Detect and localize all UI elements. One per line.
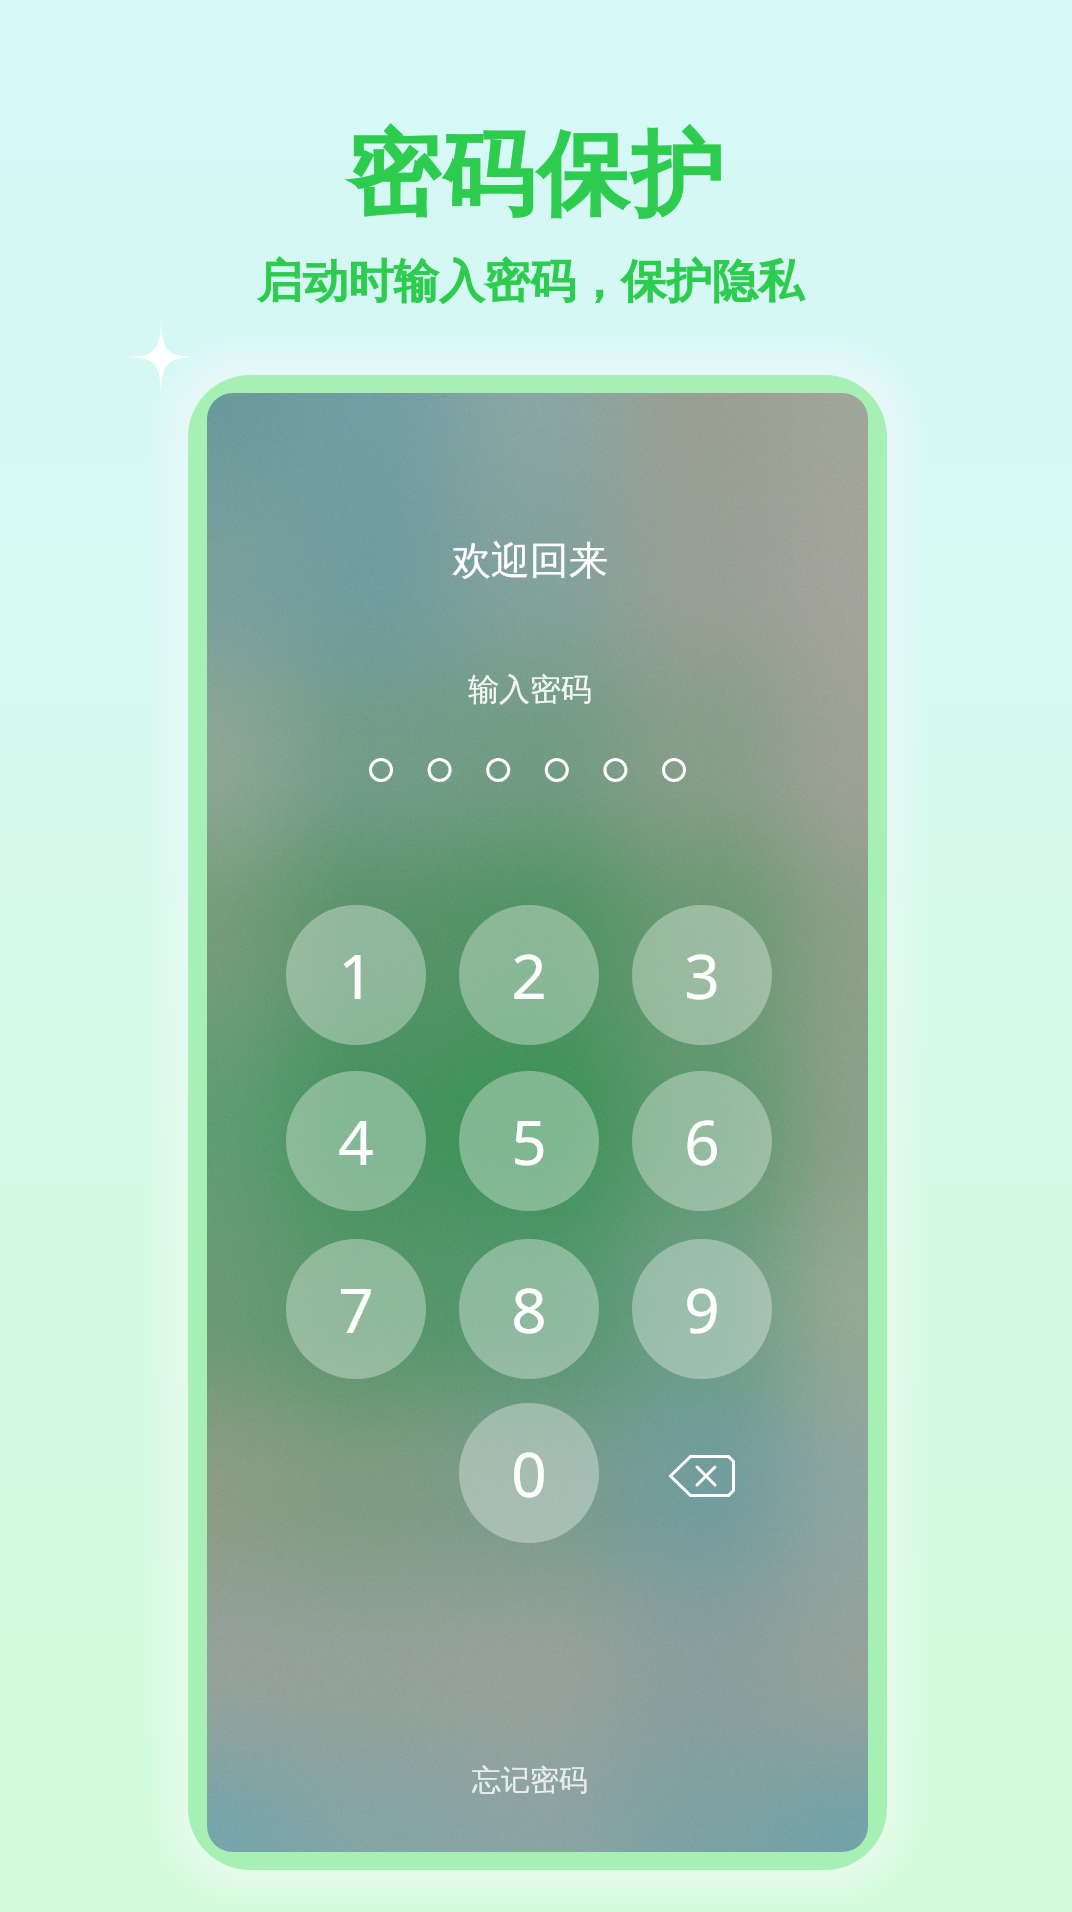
button[interactable]: 8 [459,1239,599,1379]
staticText: 5 [511,1099,547,1183]
staticText: 密码保护 [347,117,726,233]
staticText: 0 [511,1431,547,1515]
staticText: 1 [338,933,374,1017]
button[interactable]: 9 [632,1239,772,1379]
button[interactable]: 1 [286,905,426,1045]
button[interactable]: Backspace [632,1403,772,1543]
staticText: 9 [684,1267,720,1351]
button[interactable]: 忘记密码 [430,1750,630,1810]
staticText: 8 [511,1267,547,1351]
button[interactable]: 2 [459,905,599,1045]
staticText: 6 [684,1099,720,1183]
staticText: 3 [684,933,720,1017]
staticText: 欢迎回来 [452,536,608,585]
button[interactable]: 6 [632,1071,772,1211]
staticText: 输入密码 [468,670,592,709]
button[interactable]: 0 [459,1403,599,1543]
button[interactable]: 3 [632,905,772,1045]
staticText: 启动时输入密码，保护隐私 [257,253,803,310]
staticText: 7 [338,1267,374,1351]
staticText: 4 [338,1099,374,1183]
staticText: 忘记密码 [472,1762,588,1799]
staticText: 2 [511,933,547,1017]
button[interactable]: 4 [286,1071,426,1211]
button[interactable]: 5 [459,1071,599,1211]
button[interactable]: 7 [286,1239,426,1379]
